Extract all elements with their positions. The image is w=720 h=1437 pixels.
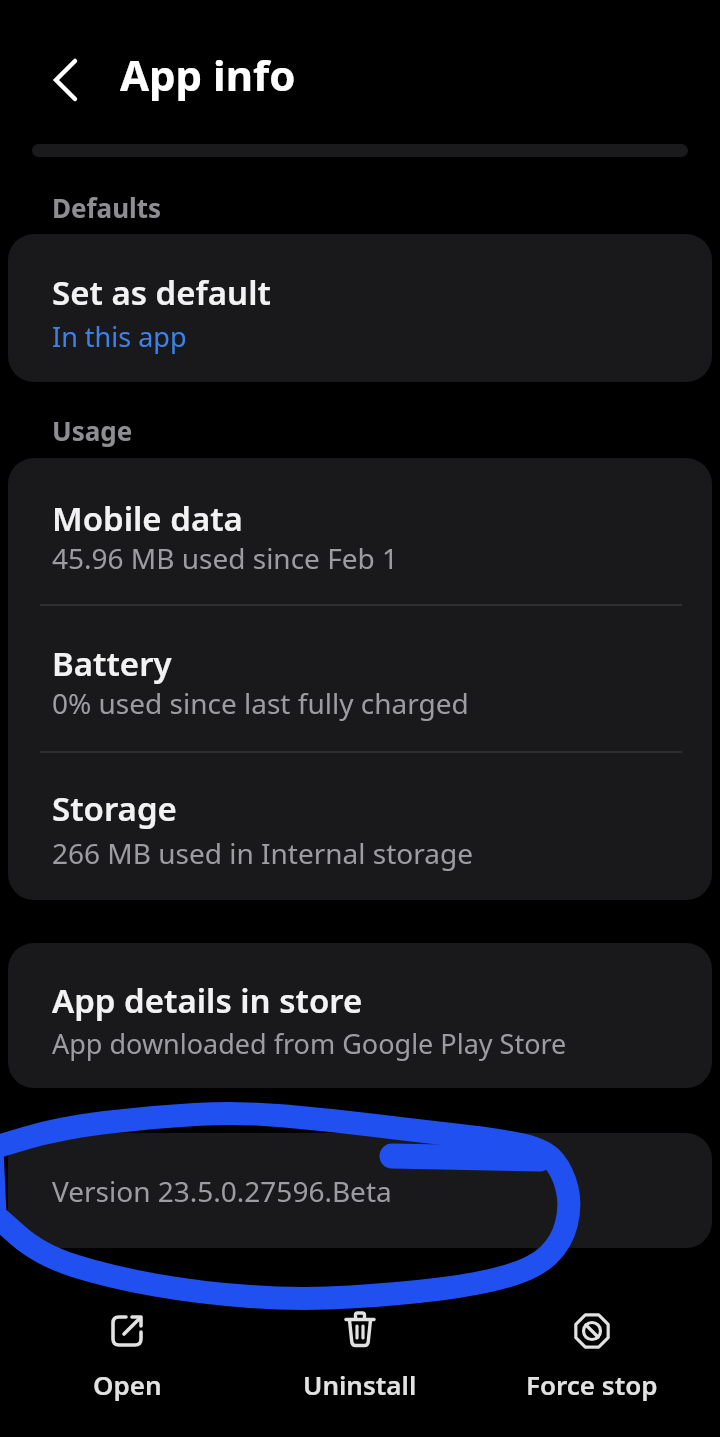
button[interactable]: Open bbox=[47, 1300, 207, 1410]
button[interactable]: Set as default bbox=[8, 234, 712, 382]
staticText: Storage bbox=[52, 786, 177, 831]
staticText: Set as default bbox=[52, 270, 271, 315]
staticText: Mobile data bbox=[52, 496, 243, 541]
staticText: App downloaded from Google Play Store bbox=[52, 1025, 567, 1062]
staticText: 0% used since last fully charged bbox=[52, 684, 469, 722]
button[interactable]: Force stop bbox=[512, 1300, 672, 1410]
staticText: In this app bbox=[52, 318, 187, 355]
staticText: Battery bbox=[52, 641, 172, 686]
staticText: Version 23.5.0.27596.Beta bbox=[52, 1172, 392, 1210]
button[interactable]: Uninstall bbox=[280, 1300, 440, 1410]
staticText: Force stop bbox=[526, 1367, 658, 1402]
staticText: App info bbox=[120, 46, 296, 103]
button[interactable]: Mobile data bbox=[8, 458, 712, 605]
button[interactable]: App details in store bbox=[8, 943, 712, 1088]
staticText: Open bbox=[93, 1367, 162, 1402]
staticText: 266 MB used in Internal storage bbox=[52, 834, 473, 872]
staticText: App details in store bbox=[52, 978, 363, 1023]
staticText: Uninstall bbox=[303, 1367, 417, 1402]
staticText: Usage bbox=[52, 413, 133, 448]
button[interactable]: Storage bbox=[8, 752, 712, 900]
staticText: Defaults bbox=[52, 190, 162, 225]
staticText: 45.96 MB used since Feb 1 bbox=[52, 539, 399, 577]
button[interactable] bbox=[40, 52, 90, 108]
button[interactable]: Battery bbox=[8, 605, 712, 752]
